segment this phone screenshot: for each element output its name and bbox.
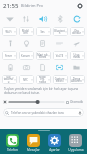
button[interactable]: Ayarlar <box>44 132 65 154</box>
button[interactable]: Bluetooth <box>53 27 68 36</box>
button[interactable]: Konum <box>19 51 34 60</box>
button[interactable]: Mobil erş. nokta <box>34 61 51 74</box>
button[interactable]: Mesajlar <box>23 132 44 154</box>
button[interactable]: Fener <box>2 37 18 50</box>
button[interactable]: VoLTE <box>51 37 68 50</box>
button[interactable]: Capture ekranı <box>51 61 68 74</box>
staticText: Capture ekranı <box>54 77 65 83</box>
button[interactable]: Telefon <box>1 132 23 154</box>
other: Brightness <box>3 100 7 104</box>
button[interactable]: Vibrate <box>18 11 34 26</box>
staticText: dokunun ve basılı tutun. <box>4 91 41 95</box>
staticText: Oto döndür <box>71 29 82 35</box>
button[interactable]: Otomatik <box>66 100 84 104</box>
button[interactable] <box>9 98 64 106</box>
staticText: Bildirim Pro <box>21 3 44 8</box>
button[interactable]: Wi-Fi <box>2 11 18 26</box>
button[interactable]: Mobil erş. nokta <box>36 75 51 84</box>
staticText: Tuşları yeniden sıralamak için bir hızlı… <box>4 87 79 91</box>
button[interactable]: Bluetooth <box>51 11 68 26</box>
button[interactable]: Ses <box>36 27 51 36</box>
button[interactable]: Uçuş modu <box>68 37 85 50</box>
button[interactable]: NFC <box>18 61 34 74</box>
staticText: Bluetooth <box>54 29 65 35</box>
staticText: Güç tasarrufu <box>3 75 14 84</box>
button[interactable]: Uçuş modu <box>70 51 85 60</box>
button[interactable]: Telefon ara ve yakındaki cihazları tara <box>3 108 84 117</box>
button[interactable]: Oto döndür <box>70 27 85 36</box>
button[interactable]: Fener <box>2 51 17 60</box>
button[interactable]: Wi-Fi <box>2 27 17 36</box>
staticText: VoLTE <box>54 54 65 58</box>
staticText: Fener <box>3 54 14 58</box>
staticText: Mesajlar <box>27 148 40 152</box>
staticText: Uygulama <box>68 148 84 152</box>
staticText: Telefon <box>7 148 18 152</box>
staticText: Dosya Aktarımı <box>71 77 82 83</box>
staticText: Wi-Fi <box>3 30 14 34</box>
staticText: Uçuş modu <box>71 53 82 59</box>
button[interactable]: NFC <box>19 75 34 84</box>
staticText: Konum <box>20 54 31 58</box>
button[interactable]: Konum <box>18 37 34 50</box>
button[interactable]: Mavi ışık filtresi <box>34 37 51 50</box>
button[interactable]: Uygulama <box>65 132 86 154</box>
staticText: Mavi ışık filtresi <box>37 53 48 59</box>
staticText: Ses <box>37 30 48 34</box>
staticText: Otomatik <box>70 100 84 104</box>
staticText: Mobil erş. nokta <box>37 75 48 84</box>
staticText: NFC <box>20 78 31 82</box>
button[interactable]: Güç tasarrufu <box>2 75 17 84</box>
button[interactable]: Sound <box>34 11 51 26</box>
button[interactable]: Güç tasarrufu <box>2 61 18 74</box>
button[interactable]: Settings <box>75 1 84 10</box>
button[interactable]: Mavi ışık filtresi <box>36 51 51 60</box>
button[interactable]: Capture ekranı <box>53 75 68 84</box>
button[interactable]: Auto rotate <box>68 11 85 26</box>
staticText: Mobil veri <box>20 29 31 35</box>
staticText: 21:55 <box>3 2 19 10</box>
staticText: Ayarlar <box>49 148 60 152</box>
button[interactable]: Dosya Aktarımı <box>70 75 85 84</box>
button[interactable]: Mobil veri <box>19 27 34 36</box>
button[interactable]: Dosya Aktarımı <box>68 61 85 74</box>
staticText: Telefon ara ve yakındaki cihazları tara <box>11 111 78 115</box>
button[interactable]: VoLTE <box>53 51 68 60</box>
